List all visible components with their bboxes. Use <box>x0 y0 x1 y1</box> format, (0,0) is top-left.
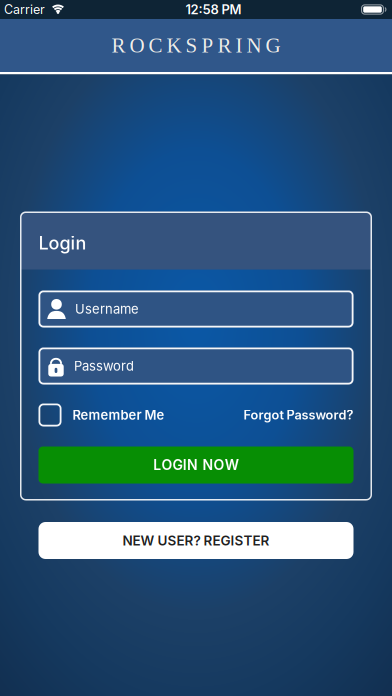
staticText: Password <box>74 358 134 374</box>
button[interactable]: Username <box>38 290 353 327</box>
staticText: Login <box>38 232 86 254</box>
staticText: Carrier <box>4 2 45 17</box>
button[interactable]: LOGIN NOW <box>38 446 353 483</box>
staticText: NEW USER? REGISTER <box>122 532 269 549</box>
staticText: Forgot Password? <box>243 407 353 423</box>
button[interactable]: Forgot Password? <box>243 407 353 423</box>
button[interactable]: Password <box>38 347 353 384</box>
staticText: Username <box>75 301 139 317</box>
staticText: 12:58 PM <box>185 2 241 17</box>
staticText: Remember Me <box>72 407 164 423</box>
button[interactable]: NEW USER? REGISTER <box>38 522 353 559</box>
staticText: R O C K S P R I N G <box>111 34 280 57</box>
button[interactable]: Remember Me <box>38 403 164 426</box>
staticText: LOGIN NOW <box>153 456 239 473</box>
